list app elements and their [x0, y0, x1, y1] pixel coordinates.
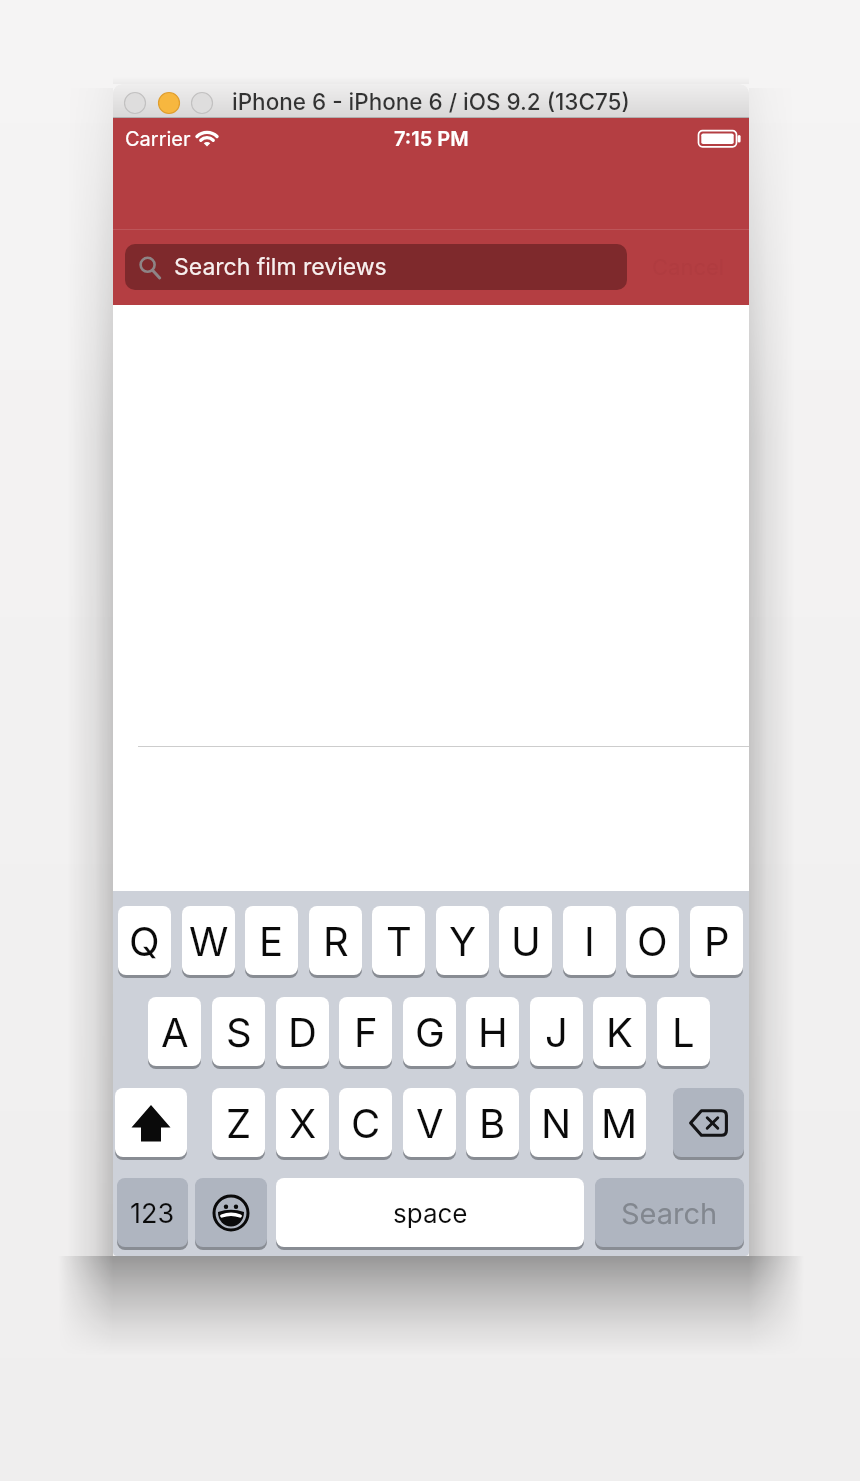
staticText: J: [545, 1008, 568, 1056]
staticText: D: [288, 1008, 317, 1056]
staticText: Y: [449, 917, 477, 965]
staticText: K: [606, 1008, 633, 1056]
staticText: space: [393, 1198, 468, 1229]
staticText: L: [672, 1008, 695, 1056]
button[interactable]: [115, 1088, 187, 1158]
staticText: X: [289, 1099, 317, 1147]
staticText: 7:15 PM: [394, 127, 469, 151]
button[interactable]: Y: [436, 906, 489, 976]
button[interactable]: O: [626, 906, 679, 976]
button[interactable]: W: [182, 906, 235, 976]
staticText: C: [351, 1099, 381, 1147]
button[interactable]: [195, 1178, 267, 1248]
staticText: M: [601, 1099, 638, 1147]
staticText: Q: [129, 917, 160, 965]
staticText: O: [637, 917, 668, 965]
button[interactable]: 123: [117, 1178, 188, 1248]
button[interactable]: K: [593, 997, 646, 1067]
staticText: G: [415, 1008, 445, 1056]
staticText: B: [479, 1099, 506, 1147]
staticText: S: [226, 1008, 252, 1056]
staticText: T: [386, 917, 412, 965]
staticText: 123: [130, 1197, 175, 1230]
staticText: R: [323, 917, 349, 965]
button[interactable]: X: [276, 1088, 329, 1158]
staticText: W: [189, 917, 229, 965]
button[interactable]: A: [148, 997, 201, 1067]
staticText: Z: [226, 1099, 252, 1147]
button[interactable]: Search: [595, 1178, 744, 1248]
staticText: I: [584, 917, 595, 965]
staticText: E: [259, 917, 284, 965]
button[interactable]: Z: [212, 1088, 265, 1158]
staticText: H: [478, 1008, 508, 1056]
button[interactable]: V: [403, 1088, 456, 1158]
button[interactable]: R: [309, 906, 362, 976]
staticText: Carrier: [125, 127, 191, 151]
button[interactable]: space: [276, 1178, 584, 1248]
button[interactable]: [673, 1088, 744, 1158]
button[interactable]: I: [563, 906, 616, 976]
staticText: V: [416, 1099, 444, 1147]
button[interactable]: D: [276, 997, 329, 1067]
button[interactable]: H: [466, 997, 519, 1067]
button[interactable]: F: [339, 997, 392, 1067]
button[interactable]: N: [530, 1088, 583, 1158]
button[interactable]: E: [245, 906, 298, 976]
staticText: P: [704, 917, 730, 965]
button[interactable]: B: [466, 1088, 519, 1158]
button[interactable]: P: [690, 906, 743, 976]
button[interactable]: Search film reviews: [125, 244, 627, 290]
button[interactable]: J: [530, 997, 583, 1067]
staticText: U: [511, 917, 541, 965]
button[interactable]: M: [593, 1088, 646, 1158]
staticText: A: [161, 1008, 189, 1056]
button[interactable]: L: [657, 997, 710, 1067]
button[interactable]: C: [339, 1088, 392, 1158]
button[interactable]: G: [403, 997, 456, 1067]
button[interactable]: Q: [118, 906, 171, 976]
staticText: F: [354, 1008, 378, 1056]
staticText: Search: [621, 1196, 718, 1231]
button[interactable]: S: [212, 997, 265, 1067]
button[interactable]: T: [372, 906, 425, 976]
staticText: Search film reviews: [174, 253, 387, 281]
staticText: N: [541, 1099, 572, 1147]
button[interactable]: U: [499, 906, 552, 976]
staticText: iPhone 6 - iPhone 6 / iOS 9.2 (13C75): [232, 88, 630, 115]
